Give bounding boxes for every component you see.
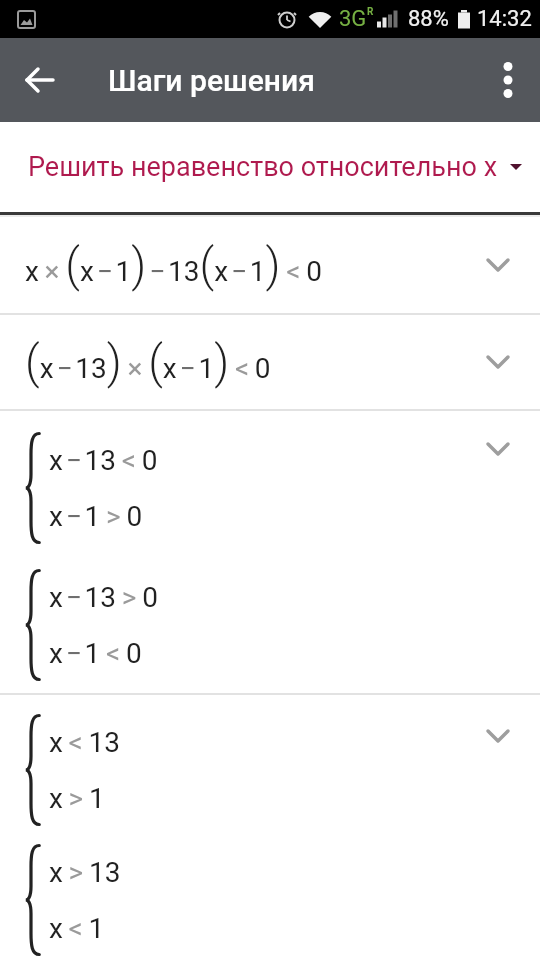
staticText: x − 1 < 0	[49, 637, 142, 670]
button[interactable]	[16, 56, 64, 104]
staticText: x − 13 < 0	[49, 444, 158, 477]
staticText: x × (x − 1) − 13(x − 1) < 0	[25, 238, 322, 292]
staticText: x < 13	[49, 726, 121, 759]
button[interactable]: x − 13 < 0	[0, 411, 540, 693]
staticText: Решить неравенство относительно x	[28, 151, 498, 183]
staticText: x < 1	[49, 912, 105, 945]
staticText: 88%	[408, 6, 449, 32]
button[interactable]: x × (x − 1) − 13(x − 1) < 0	[0, 217, 540, 313]
staticText: x − 13 > 0	[49, 581, 158, 614]
staticText: Шаги решения	[108, 63, 315, 98]
staticText: R	[367, 6, 374, 18]
staticText: 14:32	[477, 6, 532, 32]
button[interactable]	[486, 58, 530, 102]
button[interactable]: x < 13	[0, 695, 540, 956]
staticText: x − 1 > 0	[49, 500, 143, 533]
staticText: 3G	[339, 6, 367, 32]
staticText: x > 13	[49, 856, 121, 889]
button[interactable]: (x − 13) × (x − 1) < 0	[0, 315, 540, 409]
staticText: (x − 13) × (x − 1) < 0	[25, 335, 271, 389]
button[interactable]: Решить неравенство относительно x	[0, 122, 540, 212]
staticText: x > 1	[49, 782, 105, 815]
